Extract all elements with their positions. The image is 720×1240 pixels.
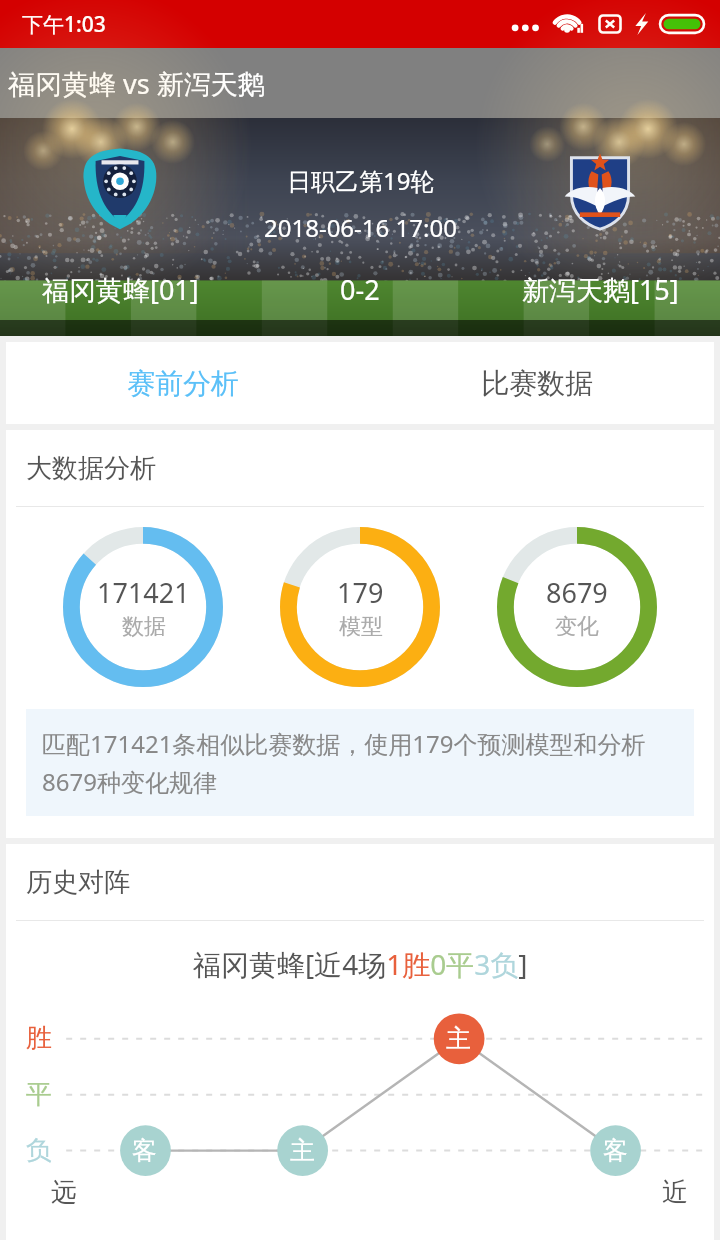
staticText: 2018-06-16 17:00 <box>264 211 457 244</box>
other: 新泻天鹅队徽 <box>558 146 642 230</box>
staticText: 远 <box>51 1176 77 1209</box>
staticText: 主 <box>290 1135 315 1166</box>
staticText: 福冈黄蜂 vs 新泻天鹅 <box>8 65 265 102</box>
staticText: 变化 <box>555 613 599 641</box>
staticText: 近 <box>662 1176 688 1209</box>
staticText: 福冈黄蜂[01] <box>42 271 199 308</box>
staticText: 0-2 <box>340 271 380 308</box>
staticText: 客 <box>132 1135 157 1166</box>
staticText: 新泻天鹅[15] <box>522 271 679 308</box>
staticText: 赛前分析 <box>127 366 239 401</box>
button[interactable]: 匹配171421条相似比赛数据，使用179个预测模型和分析8679种变化规律 <box>42 727 678 798</box>
button[interactable]: 179 <box>280 527 440 687</box>
staticText: 主 <box>446 1023 471 1054</box>
staticText: 负 <box>26 1134 52 1167</box>
staticText: 胜 <box>26 1022 52 1055</box>
button[interactable]: 赛前分析 <box>6 342 360 424</box>
staticText: 比赛数据 <box>481 366 593 401</box>
staticText: 客 <box>603 1135 628 1166</box>
staticText: 平 <box>26 1078 52 1111</box>
button[interactable]: 171421 <box>63 527 223 687</box>
staticText: 日职乙第19轮 <box>287 164 435 197</box>
other: 福冈黄蜂队徽 <box>78 146 162 230</box>
staticText: 171421 <box>97 574 190 611</box>
button[interactable]: 比赛数据 <box>360 342 714 424</box>
staticText: 匹配171421条相似比赛数据，使用179个预测模型和分析8679种变化规律 <box>42 727 678 798</box>
staticText: 历史对阵 <box>26 866 130 899</box>
staticText: 8679 <box>546 574 608 611</box>
staticText: 数据 <box>122 613 166 641</box>
staticText: 大数据分析 <box>26 452 156 485</box>
staticText: 福冈黄蜂[近4场1胜0平3负] <box>193 945 528 983</box>
staticText: 模型 <box>339 613 383 641</box>
staticText: 179 <box>337 574 384 611</box>
staticText: 下午1:03 <box>22 10 106 39</box>
button[interactable]: 8679 <box>497 527 657 687</box>
